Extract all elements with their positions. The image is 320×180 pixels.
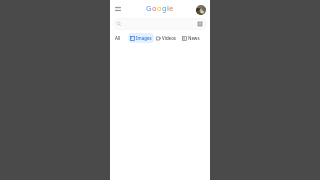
staticText: G: [146, 3, 152, 13]
button[interactable]: Videos: [154, 33, 178, 43]
staticText: o: [152, 3, 157, 13]
button[interactable]: News: [180, 33, 202, 43]
button[interactable]: Menu: [112, 3, 124, 15]
staticText: Videos: [162, 35, 176, 41]
staticText: l: [167, 3, 169, 13]
button[interactable]: Account: [196, 5, 206, 15]
staticText: o: [157, 3, 162, 13]
button[interactable]: Google Lens: [197, 21, 203, 27]
button[interactable]: All: [113, 33, 123, 43]
staticText: g: [162, 3, 167, 13]
staticText: Images: [136, 35, 152, 41]
staticText: All: [115, 35, 121, 41]
staticText: News: [188, 35, 200, 41]
button[interactable]: Images: [128, 33, 154, 43]
staticText: e: [169, 3, 174, 13]
button[interactable]: Search: [113, 18, 207, 30]
